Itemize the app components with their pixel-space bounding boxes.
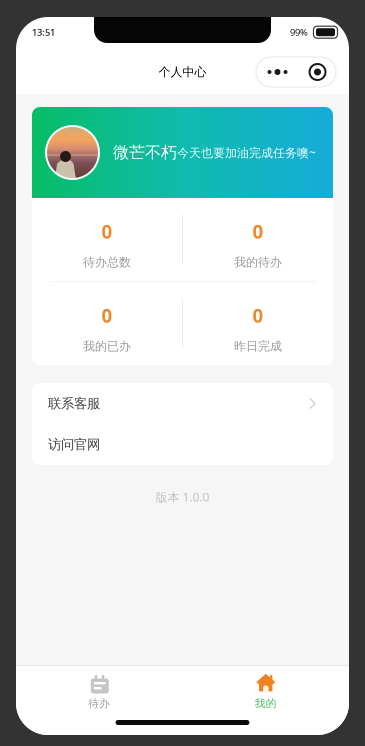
button[interactable]: 0 bbox=[183, 282, 333, 365]
button[interactable]: 0 bbox=[32, 282, 182, 365]
staticText: 访问官网 bbox=[48, 436, 100, 453]
button[interactable]: 0 bbox=[32, 198, 182, 281]
staticText: 我的待办 bbox=[234, 255, 282, 269]
staticText: 我的已办 bbox=[83, 339, 131, 353]
staticText: 版本 1.0.0 bbox=[155, 489, 209, 505]
staticText: 待办总数 bbox=[83, 255, 131, 269]
button[interactable]: 0 bbox=[183, 198, 333, 281]
button[interactable]: More bbox=[256, 57, 299, 87]
button[interactable]: 联系客服 bbox=[32, 383, 333, 424]
button[interactable]: 我的 bbox=[182, 666, 349, 715]
staticText: 0 bbox=[252, 219, 263, 244]
staticText: 今天也要加油完成任务噢~ bbox=[177, 144, 316, 160]
button[interactable]: 待办 bbox=[16, 666, 182, 715]
staticText: 联系客服 bbox=[48, 395, 100, 412]
staticText: 0 bbox=[252, 303, 263, 328]
staticText: 99% bbox=[290, 26, 308, 38]
staticText: 0 bbox=[101, 303, 112, 328]
button[interactable]: 访问官网 bbox=[32, 424, 333, 465]
staticText: 待办 bbox=[88, 697, 110, 710]
staticText: 13:51 bbox=[32, 26, 55, 38]
staticText: 个人中心 bbox=[158, 65, 206, 79]
button[interactable]: Close bbox=[299, 57, 336, 87]
staticText: 我的 bbox=[255, 697, 277, 710]
staticText: 微芒不朽 bbox=[113, 143, 177, 162]
staticText: 昨日完成 bbox=[234, 339, 282, 353]
staticText: 0 bbox=[101, 219, 112, 244]
